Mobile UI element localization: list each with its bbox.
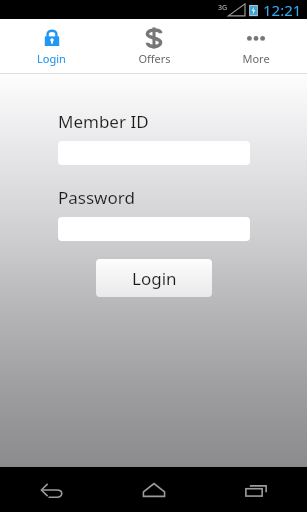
staticText: 3G (218, 3, 228, 13)
staticText: More (242, 51, 270, 66)
button[interactable]: Home (103, 467, 205, 512)
button[interactable]: Offers (103, 19, 205, 73)
staticText: Password (58, 186, 135, 209)
staticText: Member ID (58, 110, 149, 133)
button[interactable]: Login (96, 259, 212, 297)
button[interactable]: Back (0, 467, 103, 512)
staticText: Offers (138, 51, 171, 66)
staticText: Login (37, 51, 66, 66)
button[interactable]: More (205, 19, 307, 73)
button[interactable]: Login (0, 19, 103, 73)
button[interactable]: Recent apps (205, 467, 307, 512)
staticText: Login (132, 267, 177, 290)
staticText: 12:21 (263, 0, 302, 19)
